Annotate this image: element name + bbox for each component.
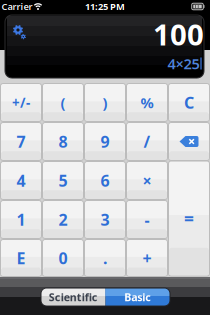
staticText: 4	[16, 170, 25, 191]
staticText: (	[60, 93, 65, 112]
button[interactable]: =	[168, 161, 209, 276]
staticText: 6	[100, 170, 109, 191]
button[interactable]: Basic	[105, 288, 170, 306]
staticText: 0	[58, 247, 67, 269]
button[interactable]: -	[126, 200, 167, 238]
staticText: 3	[100, 209, 109, 230]
button[interactable]: .	[84, 239, 125, 276]
button[interactable]: C	[168, 83, 209, 121]
button[interactable]: 0	[42, 239, 83, 276]
staticText: 1	[16, 209, 25, 230]
staticText: %	[140, 93, 153, 112]
button[interactable]: +	[126, 239, 167, 276]
staticText: 7	[16, 131, 25, 152]
button[interactable]: +/-	[0, 83, 41, 121]
staticText: Carrier	[1, 0, 32, 13]
button[interactable]: Settings	[9, 22, 29, 42]
staticText: /	[143, 131, 150, 152]
staticText: )	[102, 93, 107, 112]
staticText: 5	[58, 170, 67, 191]
button[interactable]: 1	[0, 200, 41, 238]
staticText: 100	[153, 14, 204, 53]
button[interactable]: Delete	[168, 122, 209, 160]
button[interactable]: )	[84, 83, 125, 121]
button[interactable]: 8	[42, 122, 83, 160]
button[interactable]: Scientific	[41, 288, 105, 306]
button[interactable]: 9	[84, 122, 125, 160]
button[interactable]: 2	[42, 200, 83, 238]
staticText: 2	[58, 209, 67, 230]
button[interactable]: E	[0, 239, 41, 276]
staticText: +/-	[12, 94, 30, 111]
button[interactable]: ×	[126, 161, 167, 199]
button[interactable]: 6	[84, 161, 125, 199]
staticText: =	[184, 207, 194, 230]
staticText: 9	[100, 131, 109, 152]
button[interactable]: 7	[0, 122, 41, 160]
staticText: 4×25	[167, 54, 199, 73]
button[interactable]: (	[42, 83, 83, 121]
button[interactable]: 5	[42, 161, 83, 199]
staticText: .	[103, 247, 107, 269]
staticText: ×	[142, 170, 151, 191]
button[interactable]: 4	[0, 161, 41, 199]
button[interactable]: 3	[84, 200, 125, 238]
staticText: -	[144, 209, 149, 230]
button[interactable]: /	[126, 122, 167, 160]
button[interactable]: %	[126, 83, 167, 121]
staticText: E	[16, 247, 25, 269]
staticText: 11:25 PM	[85, 0, 125, 13]
staticText: C	[184, 92, 194, 113]
staticText: 8	[58, 131, 67, 152]
staticText: Basic	[124, 290, 151, 304]
staticText: Scientific	[49, 290, 98, 304]
staticText: +	[142, 247, 151, 269]
